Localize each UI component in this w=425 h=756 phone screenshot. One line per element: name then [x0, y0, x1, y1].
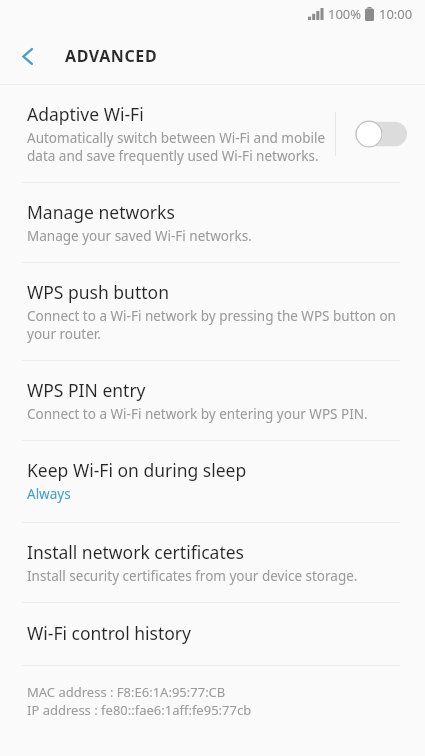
button[interactable]: Keep Wi-Fi on during sleep [0, 441, 425, 522]
staticText: 10:00 [379, 5, 413, 23]
staticText: Wi-Fi control history [27, 621, 191, 645]
button[interactable]: Manage networks [0, 183, 425, 262]
staticText: Manage your saved Wi-Fi networks. [27, 227, 252, 245]
staticText: Automatically switch between Wi-Fi and m… [27, 129, 329, 165]
staticText: Manage networks [27, 200, 175, 224]
staticText: Keep Wi-Fi on during sleep [27, 458, 247, 482]
staticText: ADVANCED [65, 45, 158, 67]
button[interactable]: Adaptive Wi-Fi toggle, off [355, 120, 407, 148]
button[interactable]: Adaptive Wi-Fi [0, 85, 425, 182]
staticText: Connect to a Wi-Fi network by pressing t… [27, 307, 407, 343]
button[interactable]: WPS PIN entry [0, 361, 425, 440]
button[interactable]: Back [0, 28, 56, 84]
button[interactable]: Wi-Fi control history [0, 603, 425, 665]
staticText: WPS PIN entry [27, 378, 146, 402]
button[interactable]: Install network certificates [0, 523, 425, 602]
staticText: Adaptive Wi-Fi [27, 102, 144, 126]
staticText: Connect to a Wi-Fi network by entering y… [27, 405, 368, 423]
staticText: WPS push button [27, 280, 169, 304]
staticText: 100% [328, 5, 362, 23]
staticText: Install security certificates from your … [27, 567, 358, 585]
staticText: MAC address : F8:E6:1A:95:77:CB [27, 683, 226, 701]
staticText: Install network certificates [27, 540, 244, 564]
staticText: Always [27, 485, 71, 503]
staticText: IP address : fe80::fae6:1aff:fe95:77cb [27, 701, 252, 719]
button[interactable]: WPS push button [0, 263, 425, 360]
